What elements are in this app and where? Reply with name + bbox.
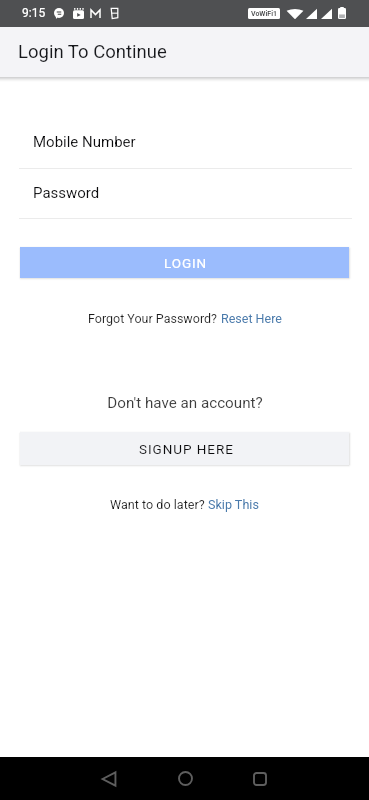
button[interactable]: Recent apps <box>238 757 282 800</box>
button[interactable]: Mobile Number <box>19 129 352 169</box>
staticText: Password <box>33 184 100 202</box>
staticText: Skip This <box>208 497 259 512</box>
button[interactable]: SIGNUP HERE <box>20 432 349 465</box>
staticText: Login To Continue <box>18 41 167 63</box>
staticText: Reset Here <box>221 311 282 326</box>
button[interactable]: Home <box>163 757 207 800</box>
staticText: VoWiFi1 <box>251 10 278 18</box>
staticText: Forgot Your Password? <box>88 311 221 326</box>
staticText: Want to do later? <box>110 497 208 512</box>
button[interactable]: LOGIN <box>20 247 349 278</box>
staticText: SIGNUP HERE <box>139 441 234 457</box>
button[interactable]: Back <box>87 757 131 800</box>
button[interactable]: Password <box>19 180 352 219</box>
button[interactable]: Reset Here <box>221 311 282 326</box>
staticText: Don't have an account? <box>107 394 263 412</box>
staticText: LOGIN <box>164 255 208 271</box>
staticText: 9:15 <box>22 6 46 20</box>
button[interactable]: Skip This <box>208 497 259 512</box>
staticText: Mobile Number <box>33 133 136 151</box>
